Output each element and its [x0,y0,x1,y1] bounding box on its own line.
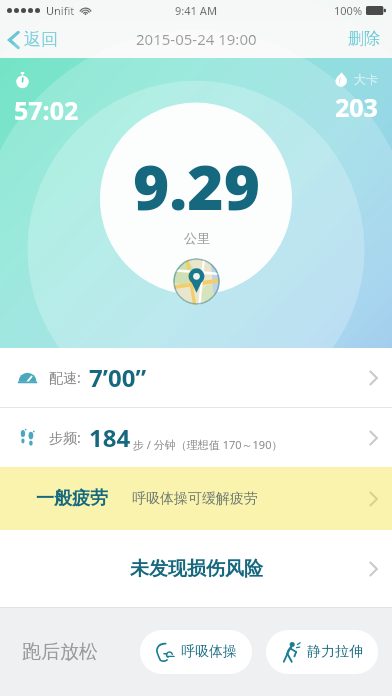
button[interactable]: 删除 [336,23,392,55]
button[interactable]: View route map [173,258,220,305]
button[interactable]: 静力拉伸 [266,630,378,674]
staticText: 100% [334,3,363,18]
staticText: 公里 [184,230,210,246]
staticText: 一般疲劳 [36,487,108,510]
staticText: 9.29 [133,144,260,228]
button[interactable]: 返回 [0,25,68,54]
button[interactable]: 未发现损伤风险 [0,530,392,607]
staticText: 呼吸体操 [181,643,237,661]
staticText: 9:41 AM [175,3,218,18]
staticText: 步频: [49,428,81,447]
staticText: 大卡 [354,72,378,87]
staticText: 呼吸体操可缓解疲劳 [132,490,258,508]
staticText: 删除 [348,29,380,49]
button[interactable]: 步频: [0,408,392,467]
button[interactable]: 一般疲劳 [0,467,392,530]
staticText: 返回 [24,29,58,50]
staticText: 未发现损伤风险 [130,557,263,581]
staticText: 57:02 [14,93,79,127]
staticText: 步 / 分钟（理想值 170～190） [133,437,283,452]
staticText: 2015-05-24 19:00 [136,29,257,49]
button[interactable]: 配速: [0,348,392,407]
button[interactable]: 呼吸体操 [140,630,252,674]
staticText: 配速: [49,368,81,387]
staticText: 跑后放松 [22,640,98,664]
staticText: 184 [89,421,131,454]
staticText: 203 [335,90,378,124]
staticText: Unifit [46,3,75,18]
staticText: 7’00” [89,361,147,394]
staticText: 静力拉伸 [307,643,363,661]
